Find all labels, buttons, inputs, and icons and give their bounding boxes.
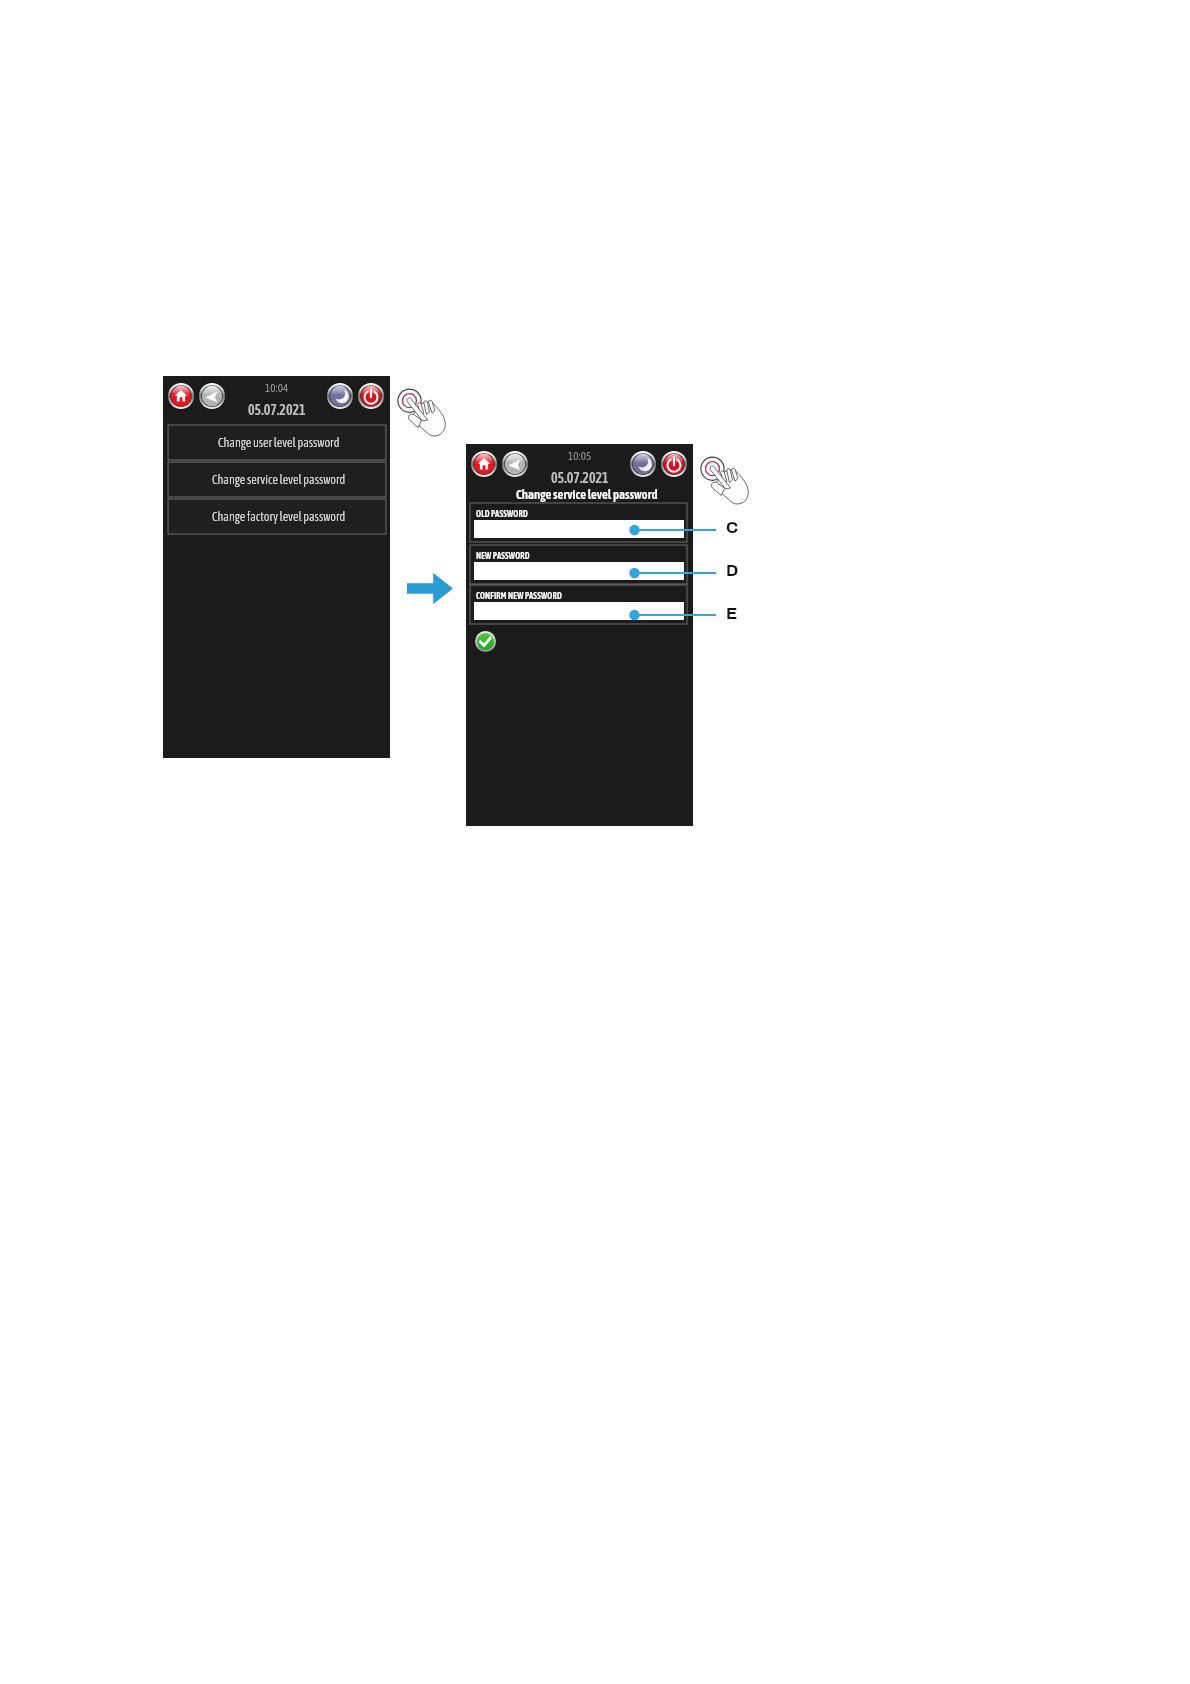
button[interactable]: Home	[168, 383, 194, 409]
button[interactable]: Sleep	[327, 383, 353, 409]
button[interactable]: Change service level password	[168, 462, 386, 497]
button[interactable]: CONFIRM NEW PASSWORD	[470, 585, 687, 624]
staticText: D	[726, 561, 739, 579]
staticText: 05.07.2021	[248, 402, 306, 418]
button[interactable]: Change user level password	[168, 425, 386, 460]
staticText: 10:05	[568, 450, 592, 463]
button[interactable]: Sleep	[630, 451, 656, 477]
button[interactable]: Home	[471, 451, 497, 477]
button[interactable]: Change factory level password	[168, 499, 386, 534]
staticText: Change factory level password	[212, 510, 346, 524]
staticText: NEW PASSWORD	[476, 551, 530, 561]
staticText: Change user level password	[218, 436, 340, 450]
staticText: CONFIRM NEW PASSWORD	[476, 591, 562, 601]
staticText: C	[726, 518, 739, 536]
button[interactable]: Power	[661, 451, 687, 477]
staticText: Change service level password	[516, 487, 658, 502]
button[interactable]: Confirm	[475, 631, 496, 652]
staticText: 10:04	[265, 382, 289, 395]
button[interactable]: Power	[358, 383, 384, 409]
button[interactable]: NEW PASSWORD	[470, 545, 687, 584]
staticText: OLD PASSWORD	[476, 509, 529, 519]
staticText: 05.07.2021	[551, 470, 609, 486]
staticText: Change service level password	[212, 473, 346, 487]
button[interactable]: Back	[502, 451, 528, 477]
button[interactable]: OLD PASSWORD	[470, 503, 687, 542]
staticText: E	[726, 604, 738, 622]
button[interactable]: Back	[199, 383, 225, 409]
